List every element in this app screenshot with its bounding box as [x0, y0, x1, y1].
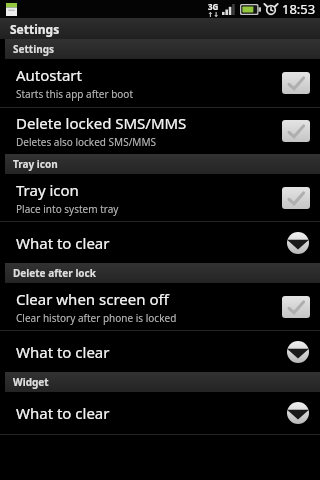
staticText: Starts this app after boot — [16, 87, 133, 101]
staticText: Delete locked SMS/MMS — [16, 113, 187, 133]
button[interactable]: Toggle — [282, 120, 310, 142]
staticText: Tray icon — [13, 157, 58, 171]
button[interactable]: What to clear — [0, 222, 320, 263]
button[interactable]: Open dropdown — [286, 401, 310, 425]
button[interactable]: Open dropdown — [286, 231, 310, 255]
staticText: Settings — [13, 42, 54, 56]
staticText: Clear history after phone is locked — [16, 311, 177, 325]
button[interactable]: Tray icon — [0, 174, 320, 221]
button[interactable]: Clear when screen off — [0, 283, 320, 330]
button[interactable]: Toggle — [282, 296, 310, 318]
staticText: What to clear — [16, 342, 286, 362]
staticText: Clear when screen off — [16, 289, 169, 309]
staticText: Tray icon — [16, 180, 79, 200]
staticText: What to clear — [16, 233, 286, 253]
button[interactable]: Toggle — [282, 187, 310, 209]
staticText: Deletes also locked SMS/MMS — [16, 135, 156, 149]
button[interactable]: Toggle — [282, 72, 310, 94]
staticText: Delete after lock — [13, 266, 96, 280]
staticText: 3G — [208, 1, 219, 12]
button[interactable]: What to clear — [0, 331, 320, 372]
button[interactable]: Delete locked SMS/MMS — [0, 108, 320, 154]
staticText: Autostart — [16, 65, 82, 85]
staticText: 18:53 — [282, 0, 316, 18]
staticText: What to clear — [16, 403, 286, 423]
staticText: Place into system tray — [16, 202, 119, 216]
button[interactable]: Autostart — [0, 59, 320, 107]
staticText: Widget — [13, 375, 49, 389]
button[interactable]: Open dropdown — [286, 340, 310, 364]
staticText: Settings — [10, 21, 60, 37]
button[interactable]: What to clear — [0, 392, 320, 434]
